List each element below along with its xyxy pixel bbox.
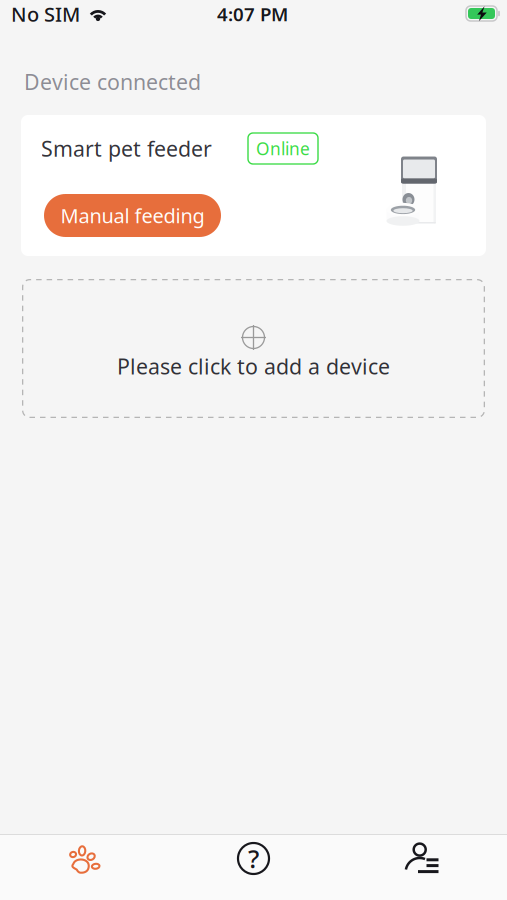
staticText: Manual feeding (60, 202, 204, 229)
button[interactable]: Manual feeding (44, 194, 221, 237)
button[interactable]: Devices (0, 834, 169, 900)
button[interactable]: Please click to add a device (22, 279, 485, 418)
staticText: 4:07 PM (217, 2, 288, 26)
staticText: Please click to add a device (117, 352, 390, 380)
staticText: ? (248, 842, 259, 875)
staticText: No SIM (11, 1, 80, 27)
button[interactable]: Help (169, 834, 338, 900)
staticText: Smart pet feeder (41, 134, 212, 163)
staticText: Device connected (24, 68, 201, 96)
staticText: Online (256, 137, 310, 160)
button[interactable]: Profile (338, 834, 507, 900)
